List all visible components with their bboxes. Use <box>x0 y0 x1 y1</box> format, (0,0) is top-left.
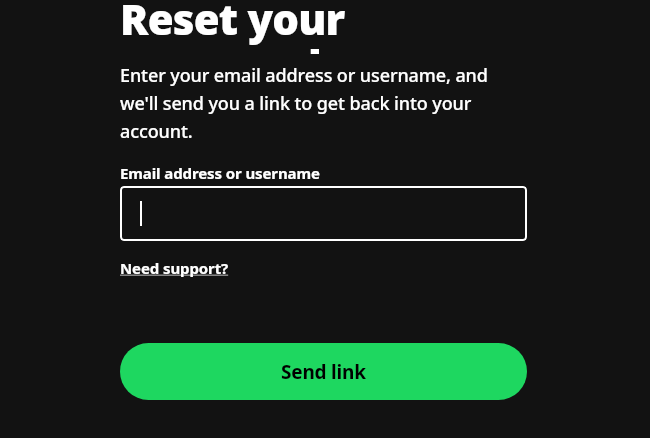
button[interactable] <box>120 186 527 241</box>
staticText: Reset your password <box>120 0 527 54</box>
button[interactable]: Send link <box>120 343 527 400</box>
staticText: Enter your email address or username, an… <box>120 63 527 143</box>
staticText: Need support? <box>120 258 229 278</box>
staticText: Send link <box>281 359 366 385</box>
staticText: Email address or username <box>120 163 320 183</box>
button[interactable]: Need support? <box>120 266 229 286</box>
